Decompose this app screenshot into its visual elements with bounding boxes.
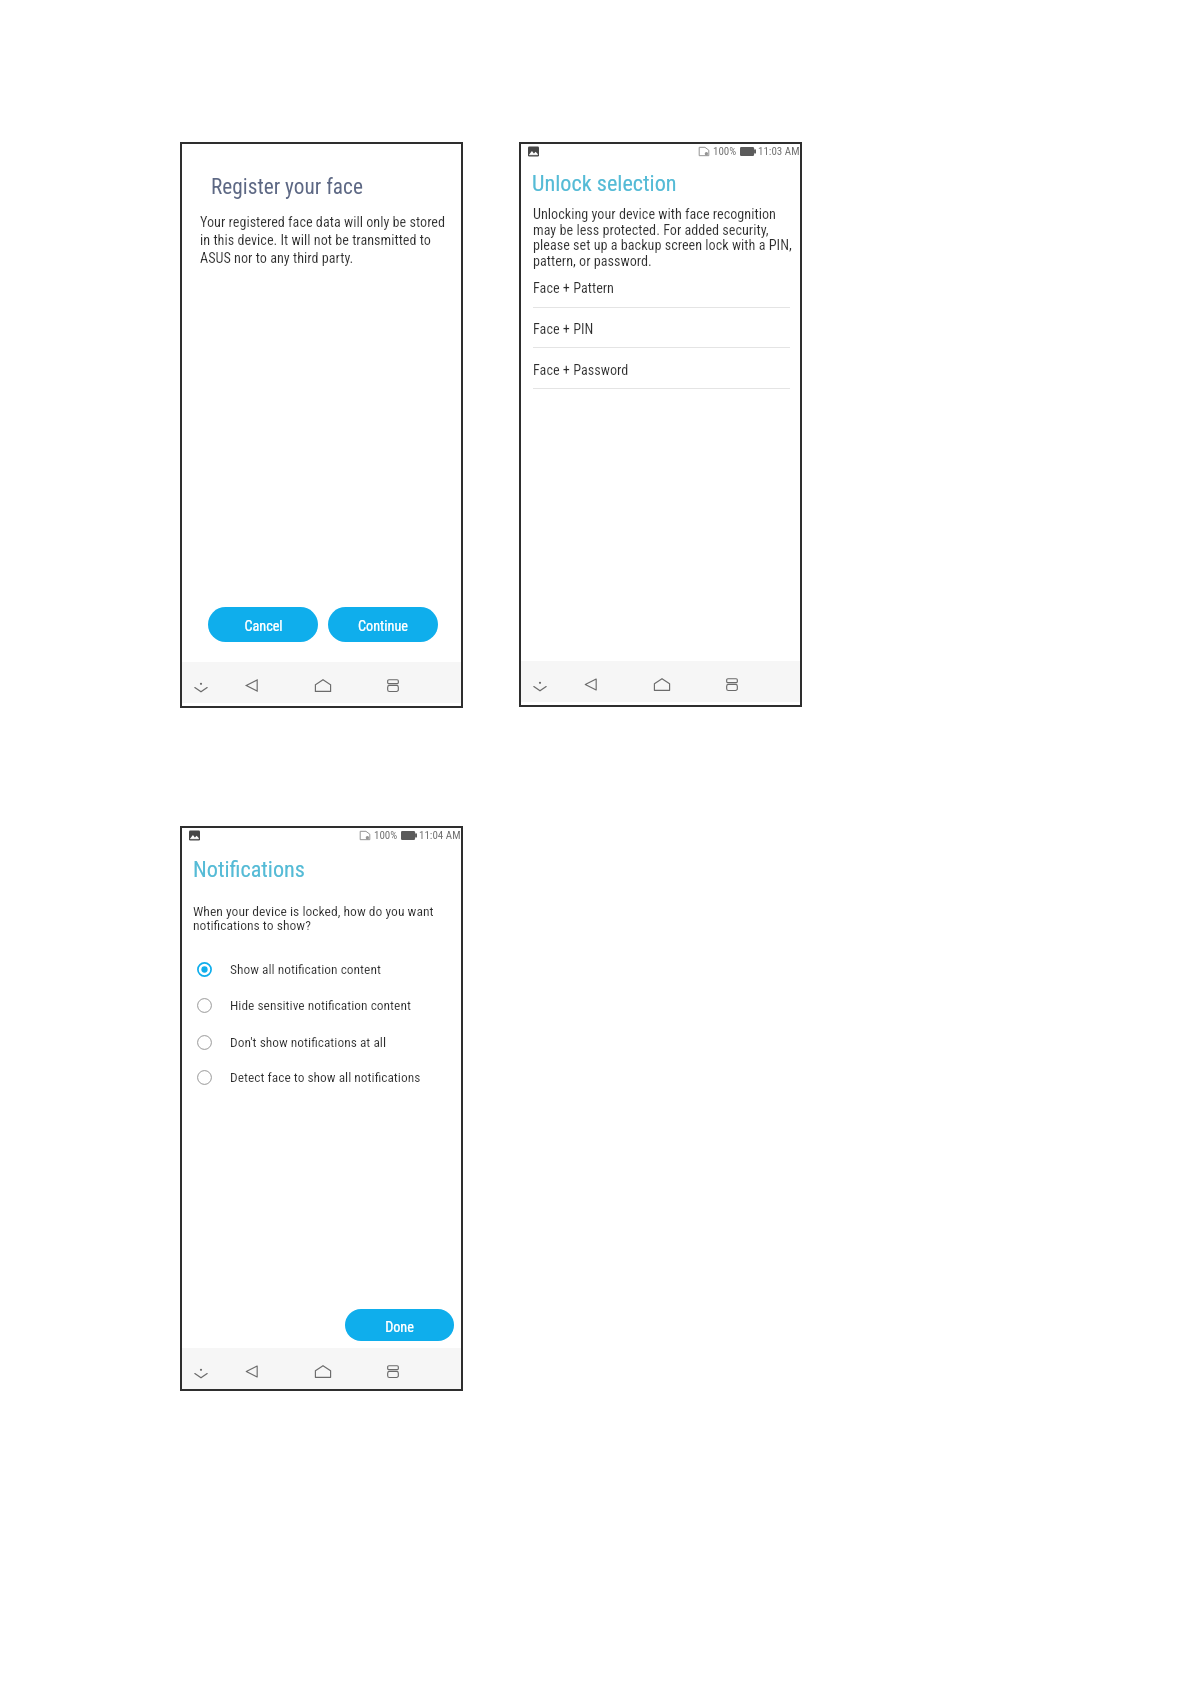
staticText: pattern, or password.	[533, 253, 652, 270]
button[interactable]: Home	[648, 670, 676, 698]
button[interactable]: Face + Password	[520, 351, 801, 391]
button[interactable]: Hide sensitive notification content	[181, 990, 462, 1020]
staticText: Register your face	[211, 174, 363, 199]
button[interactable]: Face + PIN	[520, 310, 801, 350]
staticText: Continue	[358, 618, 408, 635]
staticText: Unlocking your device with face recognit…	[533, 206, 776, 223]
staticText: Detect face to show all notifications	[230, 1070, 421, 1086]
button[interactable]: Hide keyboard	[526, 670, 554, 698]
staticText: in this device. It will not be transmitt…	[200, 232, 431, 249]
button[interactable]: Recent apps	[379, 671, 407, 699]
staticText: notifications to show?	[193, 917, 311, 933]
staticText: When your device is locked, how do you w…	[193, 903, 434, 919]
staticText: 11:03 AM	[758, 145, 800, 158]
button[interactable]: Home	[309, 1357, 337, 1385]
button[interactable]: Hide keyboard	[187, 1357, 215, 1385]
button[interactable]: Home	[309, 671, 337, 699]
staticText: Face + Password	[533, 362, 629, 379]
staticText: may be less protected. For added securit…	[533, 222, 769, 239]
staticText: 11:04 AM	[419, 829, 461, 842]
button[interactable]: Recent apps	[718, 670, 746, 698]
staticText: Face + Pattern	[533, 280, 614, 297]
button[interactable]: Continue	[328, 607, 438, 642]
staticText: Don't show notifications at all	[230, 1035, 387, 1051]
staticText: ASUS nor to any third party.	[200, 250, 354, 267]
button[interactable]: Cancel	[208, 607, 318, 642]
staticText: please set up a backup screen lock with …	[533, 237, 792, 254]
button[interactable]: Back	[238, 671, 266, 699]
staticText: Your registered face data will only be s…	[200, 214, 446, 231]
staticText: Done	[385, 1319, 414, 1336]
button[interactable]: Show all notification content	[181, 954, 462, 984]
staticText: Face + PIN	[533, 321, 594, 338]
button[interactable]: Back	[577, 670, 605, 698]
staticText: 100%	[374, 829, 398, 842]
button[interactable]: Detect face to show all notifications	[181, 1062, 462, 1092]
staticText: Unlock selection	[532, 170, 677, 196]
staticText: Hide sensitive notification content	[230, 998, 411, 1014]
staticText: Show all notification content	[230, 962, 381, 978]
button[interactable]: Done	[345, 1309, 454, 1341]
staticText: Notifications	[193, 856, 305, 882]
button[interactable]: Don't show notifications at all	[181, 1027, 462, 1057]
button[interactable]: Back	[238, 1357, 266, 1385]
staticText: 100%	[713, 145, 737, 158]
button[interactable]: Recent apps	[379, 1357, 407, 1385]
button[interactable]: Face + Pattern	[520, 269, 801, 309]
button[interactable]: Hide keyboard	[187, 671, 215, 699]
staticText: Cancel	[244, 618, 283, 635]
